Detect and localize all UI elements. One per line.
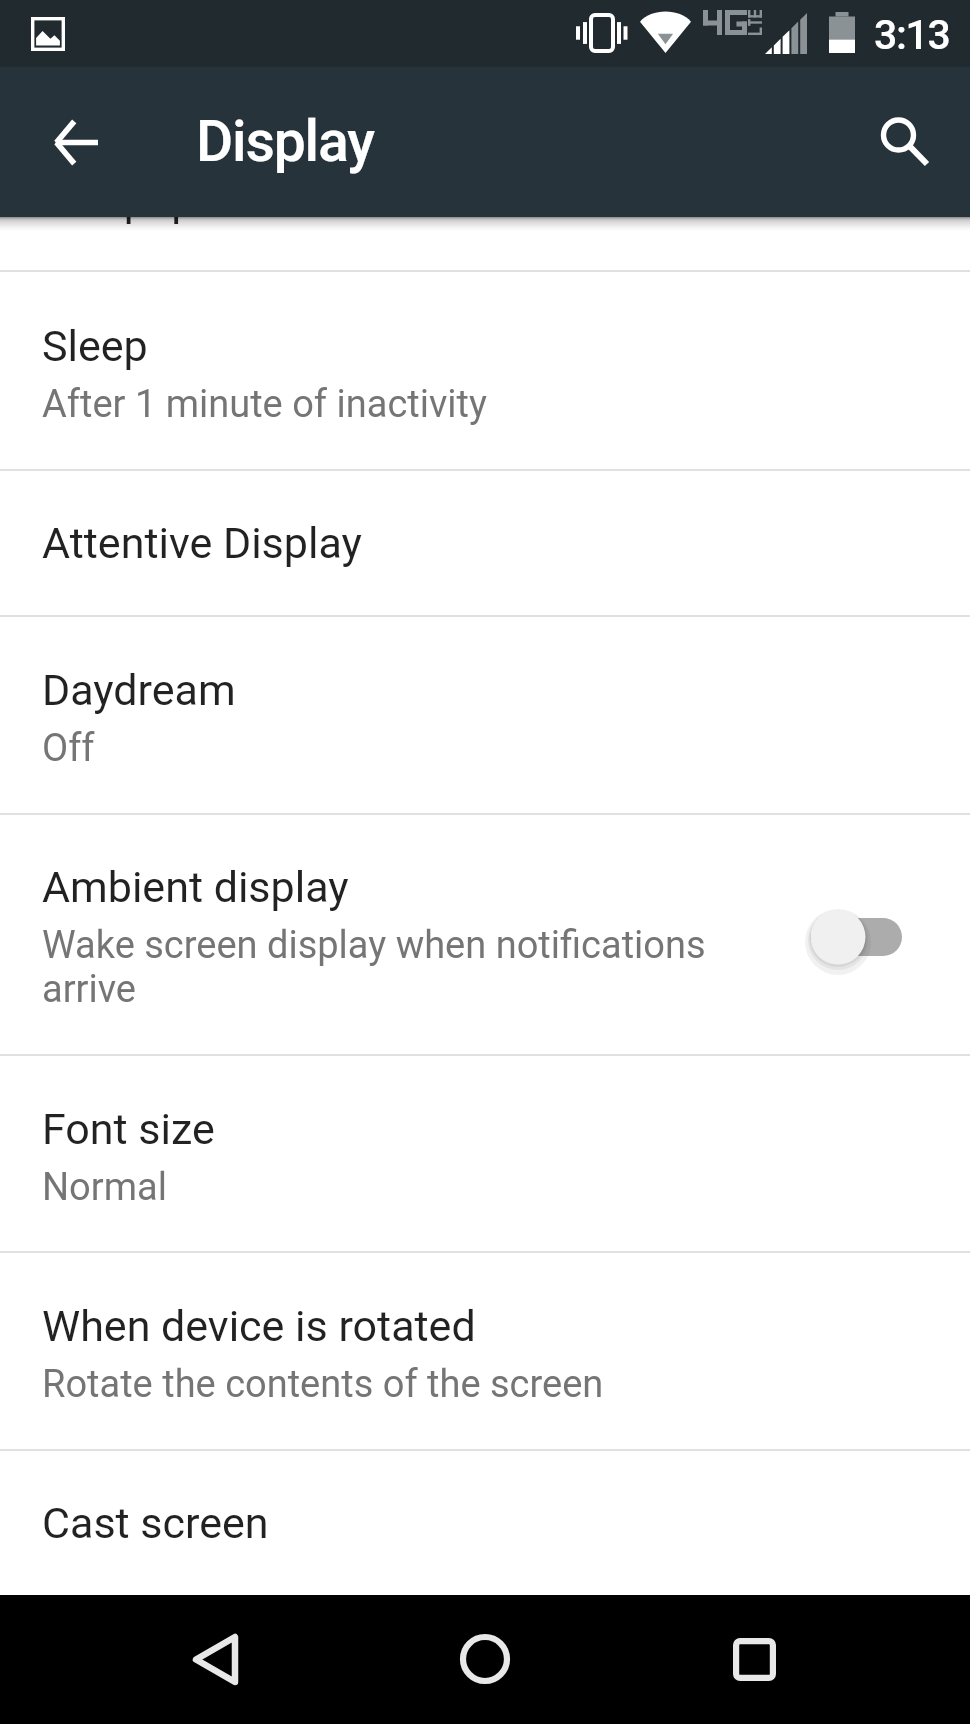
staticText: Rotate the contents of the screen bbox=[42, 1362, 604, 1407]
staticText: Wake screen display when notifications a… bbox=[42, 923, 744, 1011]
staticText: Off bbox=[42, 726, 95, 771]
staticText: Attentive Display bbox=[42, 518, 362, 568]
staticText: Font size bbox=[42, 1104, 215, 1154]
button[interactable]: Home bbox=[420, 1600, 550, 1724]
staticText: Display bbox=[196, 108, 374, 175]
button[interactable]: Ambient display bbox=[0, 815, 970, 1054]
staticText: 3:13 bbox=[874, 11, 950, 59]
button[interactable]: When device is rotated bbox=[0, 1253, 970, 1449]
button[interactable]: Navigate up bbox=[10, 98, 98, 186]
button[interactable]: Search bbox=[862, 95, 950, 183]
staticText: Daydream bbox=[42, 665, 236, 715]
button[interactable]: Ambient display toggle bbox=[778, 893, 902, 981]
staticText: Cast screen bbox=[42, 1498, 269, 1548]
staticText: Sleep bbox=[42, 321, 148, 371]
staticText: Normal bbox=[42, 1165, 167, 1210]
button[interactable]: Attentive Display bbox=[0, 471, 970, 615]
button[interactable]: Font size bbox=[0, 1056, 970, 1251]
button[interactable]: Cast screen bbox=[0, 1451, 970, 1595]
button[interactable]: Wallpaper bbox=[0, 217, 970, 270]
staticText: Wallpaper bbox=[42, 217, 233, 225]
staticText: Ambient display bbox=[42, 862, 349, 912]
staticText: When device is rotated bbox=[42, 1301, 476, 1351]
button[interactable]: Daydream bbox=[0, 617, 970, 813]
staticText: After 1 minute of inactivity bbox=[42, 382, 487, 427]
button[interactable]: Back bbox=[150, 1600, 280, 1724]
button[interactable]: Recent apps bbox=[690, 1600, 820, 1724]
button[interactable]: Sleep bbox=[0, 272, 970, 469]
